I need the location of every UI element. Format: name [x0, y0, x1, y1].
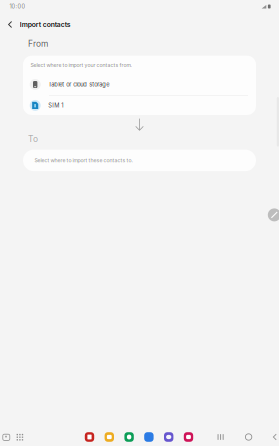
staticText: Tablet or cloud storage — [48, 81, 109, 88]
button[interactable]: App — [184, 432, 193, 442]
button[interactable]: Back — [3, 16, 18, 32]
staticText: SIM 1 — [48, 102, 63, 109]
staticText: 10:00 — [9, 3, 25, 10]
button[interactable]: App — [144, 432, 154, 442]
staticText: To — [28, 134, 38, 144]
button[interactable]: Home — [239, 429, 259, 445]
button[interactable]: App — [85, 432, 94, 442]
staticText: From — [28, 39, 48, 49]
button[interactable]: Recents — [211, 429, 231, 445]
staticText: Select where to import your contacts fro… — [30, 62, 131, 68]
staticText: Select where to import these contacts to… — [34, 157, 132, 163]
button[interactable]: App — [104, 432, 114, 442]
button[interactable]: App — [124, 432, 134, 442]
button[interactable]: Back — [265, 429, 279, 445]
button[interactable]: Edit — [268, 208, 279, 221]
button[interactable]: All apps — [12, 429, 28, 445]
button[interactable]: SIM 1 — [23, 96, 256, 115]
button[interactable]: Recent apps — [0, 429, 14, 445]
button[interactable]: Tablet or cloud storage — [23, 74, 256, 95]
button[interactable]: Select where to import these contacts to… — [0, 150, 279, 171]
button[interactable]: App — [164, 432, 174, 442]
staticText: Import contacts — [20, 20, 71, 29]
